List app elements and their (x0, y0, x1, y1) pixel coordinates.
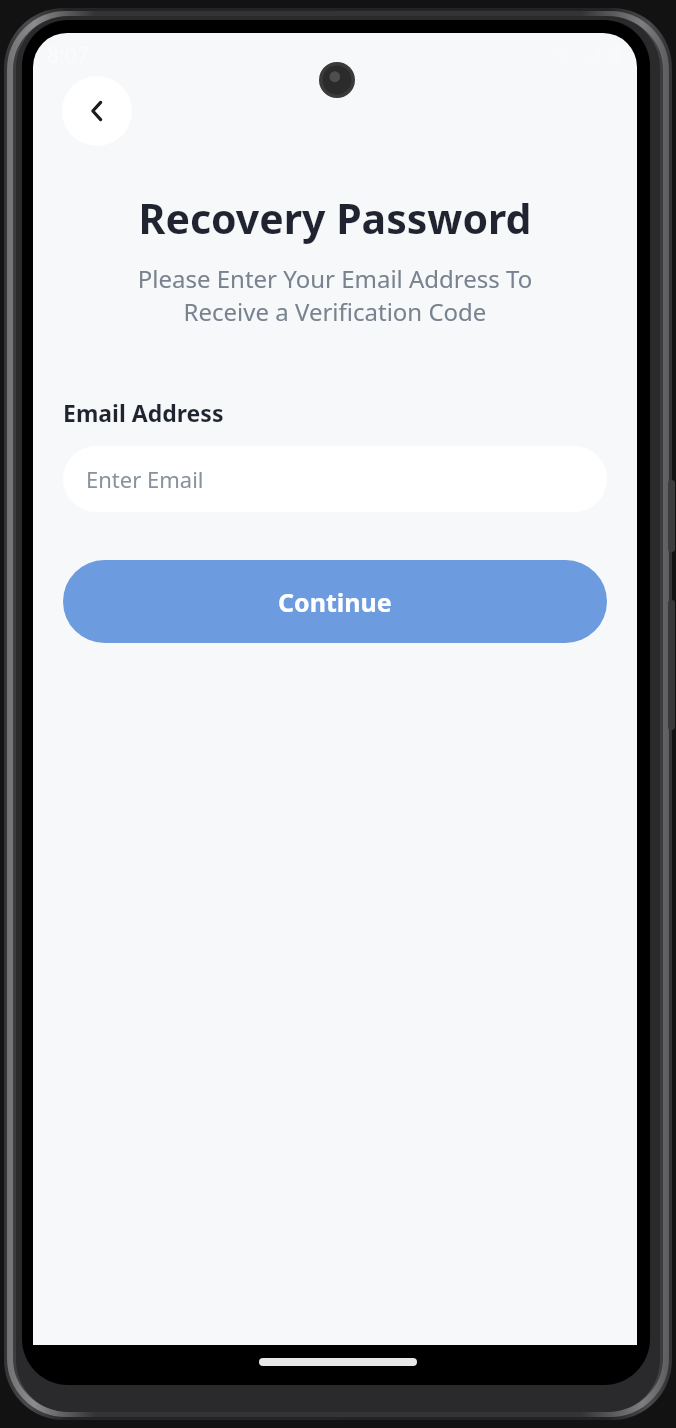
button[interactable]: Enter Email (63, 446, 607, 512)
staticText: Enter Email (86, 464, 204, 494)
button[interactable]: Continue (63, 560, 607, 643)
button[interactable]: Back (62, 76, 132, 146)
staticText: Please Enter Your Email Address To Recei… (33, 262, 637, 328)
staticText: Continue (278, 585, 392, 619)
staticText: Email Address (63, 397, 224, 428)
staticText: Recovery Password (33, 190, 637, 246)
